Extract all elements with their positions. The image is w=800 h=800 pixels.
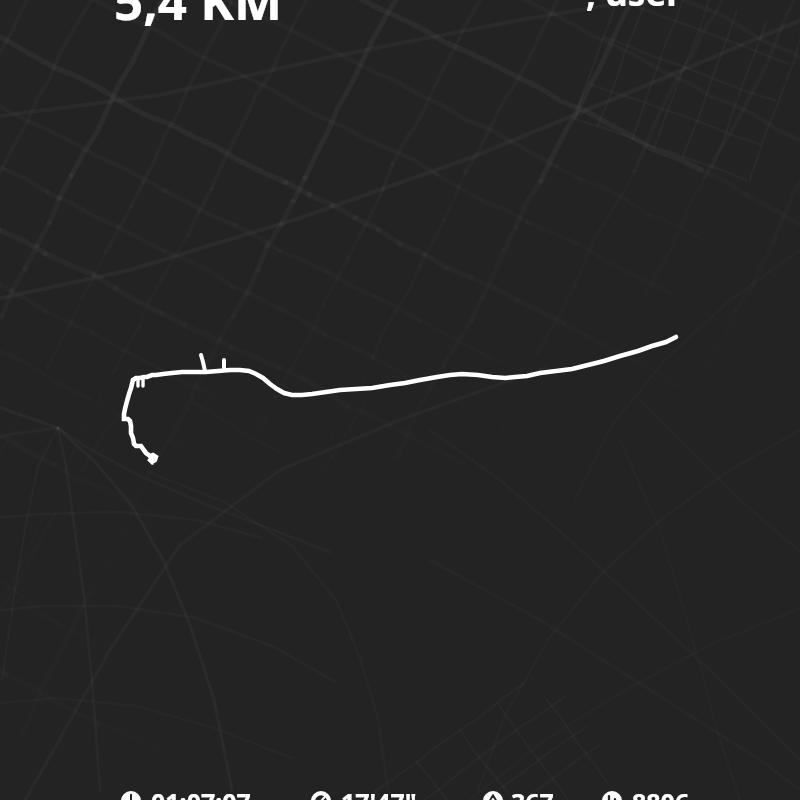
button[interactable]: 17'47" [307,785,447,800]
button[interactable]: 01:07:07 [117,785,257,800]
staticText: 5,4 KM [114,0,283,34]
button[interactable]: 367 [479,785,619,800]
staticText: 01:07:07 [151,785,251,800]
staticText: , user [586,0,682,17]
button[interactable]: 8806 [598,785,738,800]
staticText: 8806 [632,785,690,800]
staticText: 17'47" [341,785,417,800]
staticText: 367 [511,785,554,800]
